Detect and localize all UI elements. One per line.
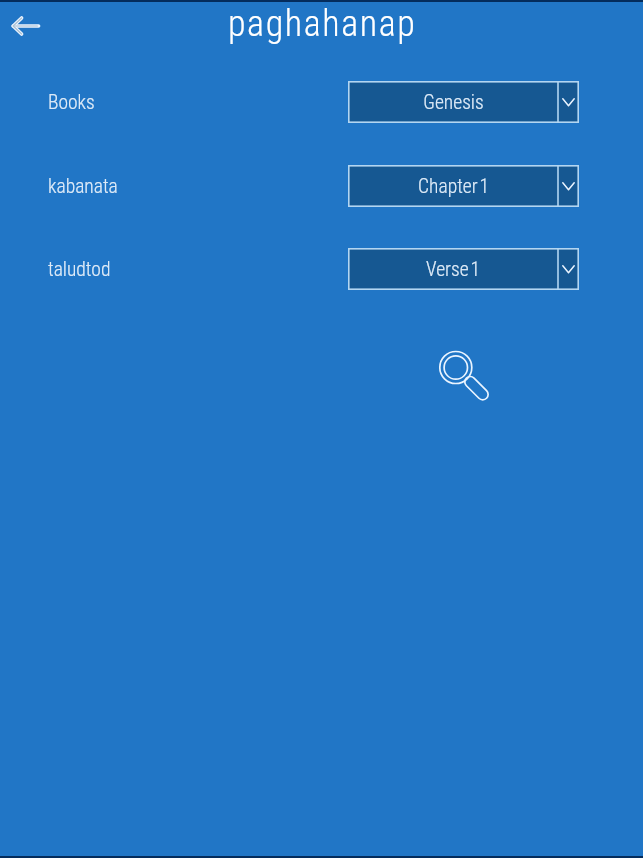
staticText: Chapter 1	[418, 175, 489, 198]
staticText: kabanata	[48, 175, 118, 198]
button[interactable]: Genesis	[348, 81, 579, 123]
button[interactable]: Search	[428, 340, 484, 396]
staticText: paghahanap	[228, 3, 417, 45]
button[interactable]: Chapter 1	[348, 165, 579, 207]
button[interactable]: Verse 1	[348, 248, 579, 290]
staticText: Verse 1	[426, 258, 480, 281]
staticText: Books	[48, 91, 95, 114]
staticText: Genesis	[423, 91, 484, 114]
staticText: taludtod	[48, 258, 111, 281]
button[interactable]: Back	[4, 4, 48, 48]
